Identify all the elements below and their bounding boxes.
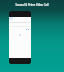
- staticText: Second & Prime Video Call: [0, 3, 64, 7]
